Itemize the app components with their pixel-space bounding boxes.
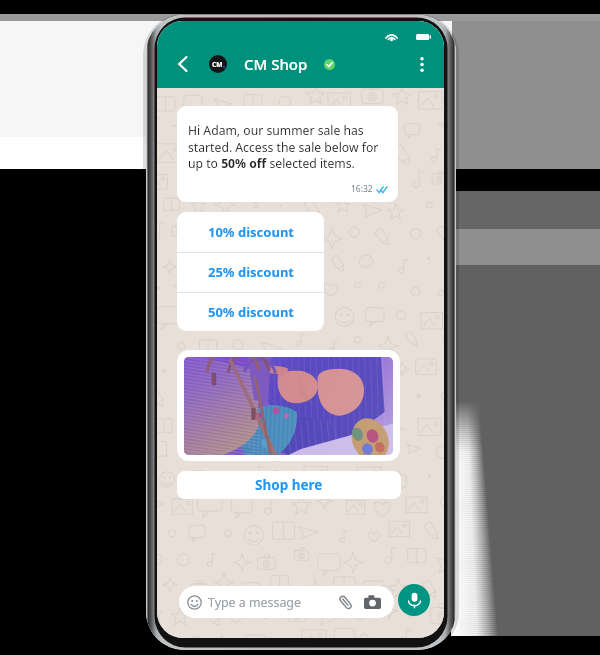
staticText: Hi Adam, our summer sale has started. Ac… bbox=[188, 122, 387, 171]
button[interactable]: Record voice message bbox=[398, 584, 430, 616]
button[interactable]: Hi Adam, our summer sale has started. Ac… bbox=[177, 106, 398, 202]
staticText: CM Shop bbox=[244, 54, 308, 74]
button[interactable]: 50% discount bbox=[177, 292, 324, 331]
staticText: 10% discount bbox=[208, 223, 294, 241]
staticText: 25% discount bbox=[208, 263, 294, 281]
staticText: Type a message bbox=[208, 594, 301, 611]
button[interactable]: More options bbox=[411, 53, 433, 75]
staticText: Shop here bbox=[255, 476, 323, 494]
button[interactable]: 10% discount bbox=[177, 212, 324, 252]
button[interactable]: Shop here bbox=[177, 471, 401, 499]
button[interactable]: Back bbox=[171, 53, 193, 75]
button[interactable]: Type a message bbox=[179, 586, 394, 618]
staticText: 16:32 bbox=[351, 183, 373, 195]
button[interactable]: 25% discount bbox=[177, 252, 324, 292]
staticText: 50% discount bbox=[208, 303, 294, 321]
button[interactable] bbox=[177, 350, 400, 461]
staticText: CM bbox=[212, 60, 223, 69]
